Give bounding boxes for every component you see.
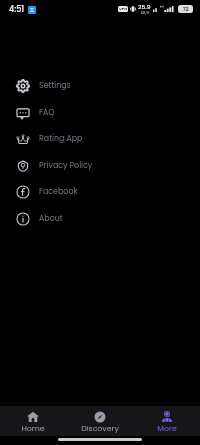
staticText: Home (21, 423, 45, 434)
staticText: 72 (183, 6, 189, 13)
button[interactable]: FAQ (0, 99, 200, 126)
staticText: KB/S (141, 10, 149, 15)
staticText: VPN (119, 6, 128, 12)
staticText: 4:51 (9, 4, 25, 15)
button[interactable]: Rating App (0, 125, 200, 152)
staticText: Rating App (39, 133, 83, 144)
button[interactable]: About (0, 205, 200, 232)
button[interactable]: Settings (0, 72, 200, 99)
staticText: Facebook (39, 186, 78, 197)
staticText: About (39, 213, 63, 224)
button[interactable]: Facebook (0, 178, 200, 205)
staticText: 25.9 (138, 3, 151, 11)
button[interactable]: Discovery (66, 406, 133, 435)
staticText: Settings (39, 80, 71, 91)
staticText: Privacy Policy (39, 160, 93, 171)
staticText: FAQ (39, 107, 55, 118)
button[interactable]: Privacy Policy (0, 152, 200, 179)
staticText: Discovery (81, 423, 119, 434)
button[interactable]: More (133, 406, 200, 435)
button[interactable]: Home (0, 406, 66, 435)
staticText: More (157, 423, 177, 434)
